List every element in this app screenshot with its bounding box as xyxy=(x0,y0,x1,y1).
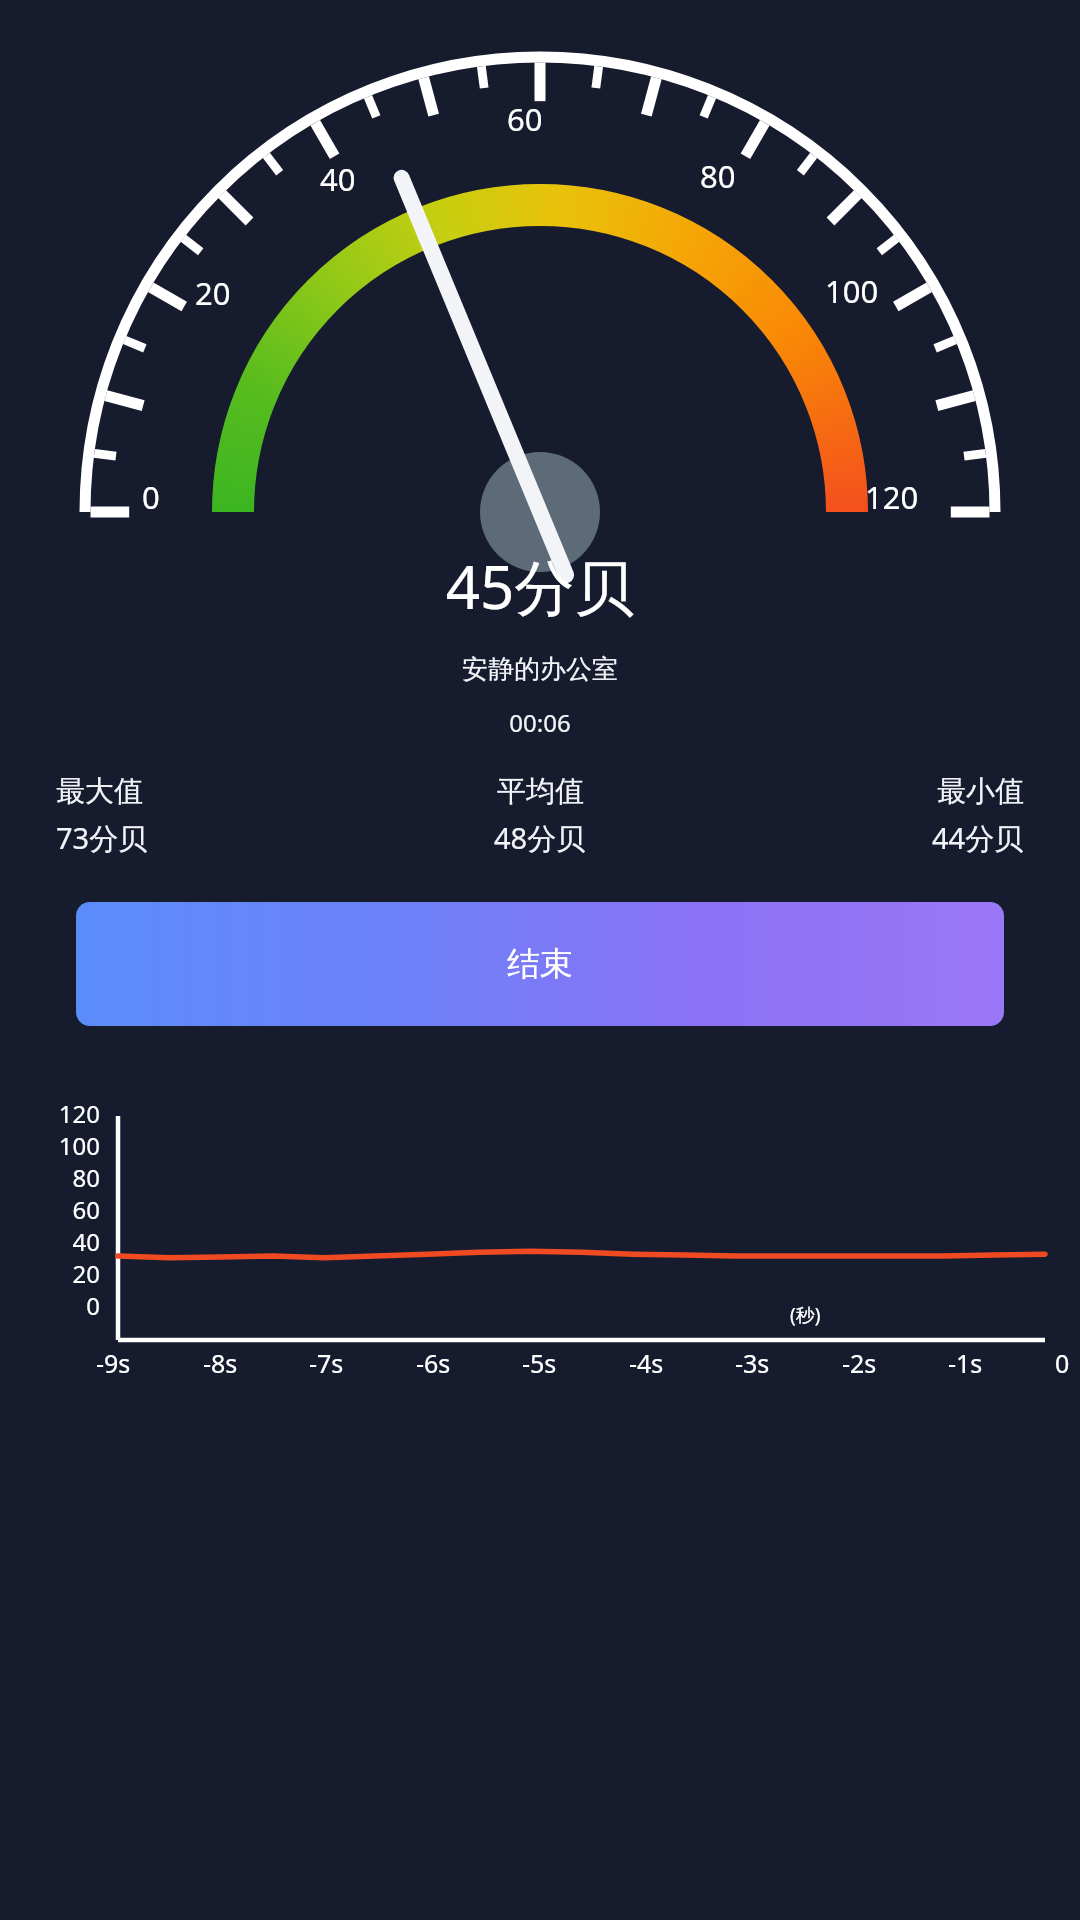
staticText: 120 xyxy=(0,1097,100,1130)
staticText: 最大值 xyxy=(56,773,143,810)
staticText: 44分贝 xyxy=(932,818,1024,858)
staticText: -5s xyxy=(522,1346,557,1380)
staticText: 100 xyxy=(825,270,879,312)
staticText: 120 xyxy=(865,476,919,518)
staticText: 80 xyxy=(0,1161,100,1194)
staticText: 80 xyxy=(700,155,736,197)
staticText: -2s xyxy=(842,1346,877,1380)
staticText: 100 xyxy=(0,1129,100,1162)
staticText: 20 xyxy=(195,272,231,314)
staticText: -1s xyxy=(948,1346,983,1380)
staticText: 0 xyxy=(1055,1346,1070,1380)
staticText: 最小值 xyxy=(937,773,1024,810)
staticText: 40 xyxy=(0,1225,100,1258)
staticText: 60 xyxy=(0,1193,100,1226)
staticText: -7s xyxy=(309,1346,344,1380)
staticText: -4s xyxy=(629,1346,664,1380)
staticText: (秒) xyxy=(790,1302,821,1328)
staticText: 20 xyxy=(0,1257,100,1290)
staticText: 结束 xyxy=(507,943,573,985)
staticText: 平均值 xyxy=(497,773,584,810)
staticText: 48分贝 xyxy=(494,818,586,858)
staticText: 73分贝 xyxy=(56,818,148,858)
staticText: 60 xyxy=(507,98,543,140)
staticText: 安静的办公室 xyxy=(0,653,1080,686)
staticText: 0 xyxy=(0,1289,100,1322)
staticText: 0 xyxy=(142,476,160,518)
staticText: -3s xyxy=(735,1346,770,1380)
staticText: -6s xyxy=(416,1346,451,1380)
staticText: 40 xyxy=(320,158,356,200)
staticText: 00:06 xyxy=(0,706,1080,739)
button[interactable]: 结束 xyxy=(76,902,1004,1026)
staticText: -9s xyxy=(96,1346,131,1380)
staticText: 45分贝 xyxy=(0,545,1080,627)
staticText: -8s xyxy=(203,1346,238,1380)
